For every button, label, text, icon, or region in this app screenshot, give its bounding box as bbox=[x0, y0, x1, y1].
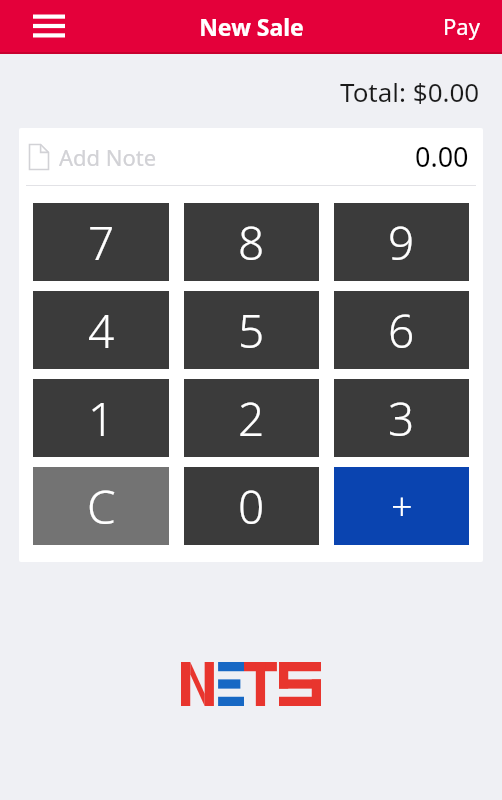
staticText: 4 bbox=[88, 299, 115, 362]
staticText: New Sale bbox=[199, 11, 304, 42]
staticText: 5 bbox=[238, 299, 265, 362]
staticText: Pay bbox=[443, 11, 480, 41]
button[interactable]: 8 bbox=[184, 203, 319, 281]
staticText: 8 bbox=[238, 211, 265, 274]
button[interactable]: 7 bbox=[33, 203, 169, 281]
button[interactable]: + bbox=[334, 467, 469, 545]
button[interactable]: 9 bbox=[334, 203, 469, 281]
staticText: 6 bbox=[388, 299, 415, 362]
button[interactable]: 6 bbox=[334, 291, 469, 369]
staticText: 3 bbox=[388, 387, 415, 450]
staticText: Add Note bbox=[59, 142, 157, 172]
staticText: + bbox=[391, 480, 413, 532]
staticText: C bbox=[87, 475, 116, 538]
button[interactable]: C bbox=[33, 467, 169, 545]
button[interactable]: Add Note bbox=[19, 128, 483, 185]
staticText: 1 bbox=[88, 387, 115, 450]
staticText: 0.00 bbox=[415, 138, 469, 175]
button[interactable]: 3 bbox=[334, 379, 469, 457]
staticText: 9 bbox=[388, 211, 415, 274]
button[interactable]: 2 bbox=[184, 379, 319, 457]
button[interactable]: Pay bbox=[437, 5, 486, 47]
staticText: Total: $0.00 bbox=[340, 74, 480, 109]
button[interactable]: Menu bbox=[26, 6, 72, 46]
button[interactable]: 5 bbox=[184, 291, 319, 369]
staticText: 7 bbox=[88, 211, 115, 274]
staticText: 2 bbox=[238, 387, 265, 450]
button[interactable]: 0 bbox=[184, 467, 319, 545]
button[interactable]: 1 bbox=[33, 379, 169, 457]
staticText: 0 bbox=[238, 475, 265, 538]
button[interactable]: 4 bbox=[33, 291, 169, 369]
